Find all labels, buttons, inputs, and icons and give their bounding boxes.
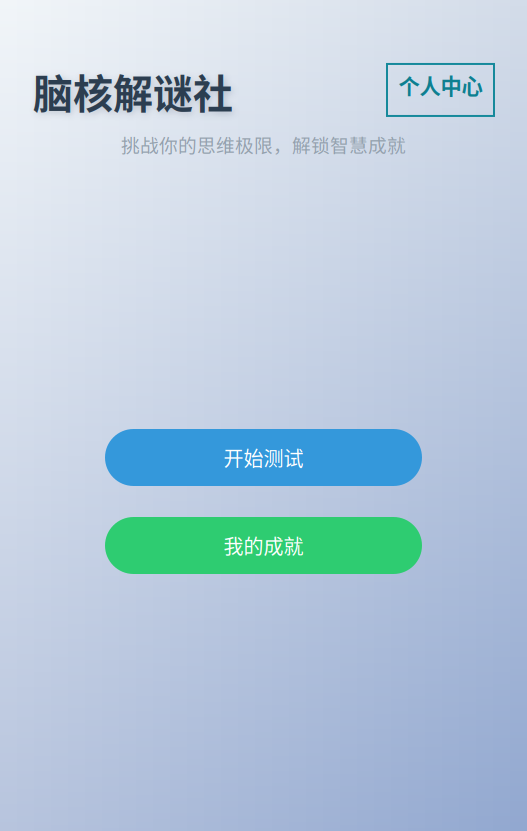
staticText: 挑战你的思维极限，解锁智慧成就 [121, 131, 406, 158]
staticText: 个人中心 [398, 69, 482, 100]
button[interactable]: 开始测试 [105, 429, 422, 486]
staticText: 脑核解谜社 [33, 62, 233, 120]
staticText: 我的成就 [223, 531, 303, 560]
button[interactable]: 个人中心 [387, 66, 494, 118]
button[interactable]: 我的成就 [105, 517, 422, 574]
staticText: 开始测试 [223, 443, 303, 472]
